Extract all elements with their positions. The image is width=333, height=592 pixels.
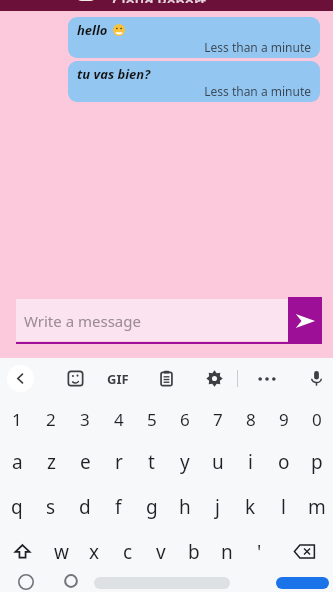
- staticText: j: [215, 494, 220, 520]
- button[interactable]: x: [78, 529, 111, 574]
- button[interactable]: h: [168, 484, 201, 529]
- button[interactable]: Back: [7, 365, 34, 392]
- staticText: m: [308, 494, 326, 520]
- staticText: q: [11, 494, 23, 520]
- button[interactable]: 9: [267, 399, 300, 439]
- button[interactable]: Voice input: [302, 358, 330, 399]
- button[interactable]: 3: [68, 399, 102, 439]
- staticText: d: [79, 494, 91, 520]
- button[interactable]: 0: [300, 399, 333, 439]
- staticText: v: [156, 539, 166, 565]
- button[interactable]: More options: [252, 358, 282, 399]
- staticText: 9: [279, 408, 289, 431]
- button[interactable]: j: [201, 484, 234, 529]
- staticText: GIF: [107, 370, 129, 388]
- button[interactable]: GIF: [98, 358, 138, 399]
- button[interactable]: Write a message: [16, 299, 304, 344]
- button[interactable]: d: [68, 484, 102, 529]
- button[interactable]: g: [135, 484, 168, 529]
- staticText: f: [115, 494, 122, 520]
- button[interactable]: w: [44, 529, 78, 574]
- staticText: Cloud Report: [112, 0, 206, 3]
- button[interactable]: z: [34, 439, 68, 484]
- button[interactable]: Stickers: [61, 358, 89, 399]
- staticText: i: [248, 449, 253, 475]
- staticText: g: [146, 494, 158, 520]
- button[interactable]: Space: [94, 577, 230, 589]
- button[interactable]: k: [234, 484, 267, 529]
- staticText: s: [46, 494, 56, 520]
- button[interactable]: ': [243, 529, 276, 574]
- staticText: c: [123, 539, 133, 565]
- staticText: 0: [312, 408, 322, 431]
- staticText: 2: [46, 408, 56, 431]
- button[interactable]: u: [201, 439, 234, 484]
- staticText: l: [281, 494, 286, 520]
- staticText: u: [212, 449, 224, 475]
- button[interactable]: s: [34, 484, 68, 529]
- button[interactable]: Backspace: [276, 529, 333, 574]
- button[interactable]: i: [234, 439, 267, 484]
- staticText: r: [115, 449, 123, 475]
- staticText: n: [221, 539, 233, 565]
- staticText: p: [311, 449, 323, 475]
- button[interactable]: 8: [234, 399, 267, 439]
- staticText: 4: [114, 408, 124, 431]
- button[interactable]: t: [135, 439, 168, 484]
- button[interactable]: e: [68, 439, 102, 484]
- button[interactable]: b: [177, 529, 210, 574]
- button[interactable]: l: [267, 484, 300, 529]
- staticText: b: [188, 539, 200, 565]
- button[interactable]: f: [102, 484, 135, 529]
- button[interactable]: Settings: [200, 358, 228, 399]
- button[interactable]: Clipboard: [152, 358, 180, 399]
- button[interactable]: [52, 574, 90, 592]
- button[interactable]: q: [0, 484, 34, 529]
- button[interactable]: c: [111, 529, 144, 574]
- staticText: tu vas bien?: [77, 65, 151, 83]
- button[interactable]: Cloud Report: [0, 0, 333, 11]
- button[interactable]: 6: [168, 399, 201, 439]
- staticText: 3: [80, 408, 90, 431]
- button[interactable]: hello: [68, 17, 320, 58]
- staticText: y: [180, 449, 190, 475]
- button[interactable]: v: [144, 529, 177, 574]
- staticText: 7: [213, 408, 223, 431]
- staticText: t: [148, 449, 155, 475]
- staticText: hello: [77, 21, 108, 39]
- button[interactable]: 7: [201, 399, 234, 439]
- staticText: Less than a minute: [68, 39, 311, 55]
- button[interactable]: m: [300, 484, 333, 529]
- staticText: a: [12, 449, 23, 475]
- button[interactable]: a: [0, 439, 34, 484]
- button[interactable]: tu vas bien?: [68, 61, 320, 102]
- staticText: k: [245, 494, 256, 520]
- staticText: ': [257, 539, 262, 565]
- staticText: Less than a minute: [68, 83, 311, 99]
- button[interactable]: r: [102, 439, 135, 484]
- button[interactable]: Shift: [0, 529, 44, 574]
- button[interactable]: n: [210, 529, 243, 574]
- button[interactable]: Enter: [276, 577, 329, 589]
- button[interactable]: 4: [102, 399, 135, 439]
- button[interactable]: y: [168, 439, 201, 484]
- staticText: o: [278, 449, 290, 475]
- staticText: z: [47, 449, 56, 475]
- staticText: 1: [12, 408, 22, 431]
- staticText: 8: [246, 408, 256, 431]
- staticText: x: [89, 539, 100, 565]
- staticText: 6: [180, 408, 190, 431]
- button[interactable]: [0, 574, 52, 592]
- staticText: h: [179, 494, 191, 520]
- staticText: 5: [147, 408, 157, 431]
- button[interactable]: o: [267, 439, 300, 484]
- staticText: e: [80, 449, 91, 475]
- button[interactable]: 2: [34, 399, 68, 439]
- button[interactable]: 1: [0, 399, 34, 439]
- button[interactable]: p: [300, 439, 333, 484]
- button[interactable]: Send: [288, 297, 322, 344]
- staticText: Write a message: [24, 311, 141, 331]
- button[interactable]: 5: [135, 399, 168, 439]
- staticText: w: [54, 539, 69, 565]
